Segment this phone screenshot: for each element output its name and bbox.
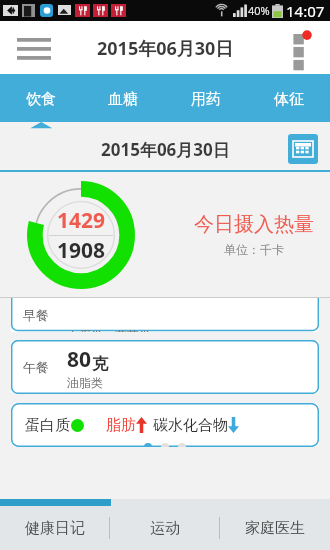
staticText: 单位：千卡 — [224, 242, 284, 257]
staticText: 饮食 — [26, 90, 56, 109]
staticText: 1429 — [57, 206, 106, 235]
staticText: 运动 — [150, 519, 180, 538]
staticText: 蔬菜类 — [115, 328, 151, 332]
button[interactable]: 血糖 — [82, 76, 164, 122]
staticText: 脂肪 — [106, 416, 136, 435]
button[interactable]: 健康日记 — [0, 506, 110, 550]
staticText: 家庭医生 — [245, 519, 305, 538]
button[interactable]: 午餐 — [11, 340, 319, 394]
button[interactable]: 早餐 — [11, 298, 319, 332]
staticText: 蛋白质 — [25, 416, 70, 435]
staticText: 碳水化合物 — [153, 416, 228, 435]
staticText: 早餐 — [23, 307, 49, 323]
staticText: 2015年06月30日 — [101, 138, 230, 161]
staticText: 血糖 — [108, 90, 138, 109]
staticText: 1908 — [57, 236, 106, 265]
button[interactable]: 家庭医生 — [220, 506, 330, 550]
staticText: 2015年06月30日 — [97, 36, 234, 61]
button[interactable]: 用药 — [164, 76, 247, 122]
staticText: 健康日记 — [25, 519, 85, 538]
staticText: 80 — [67, 345, 92, 374]
staticText: 午餐 — [23, 359, 49, 375]
button[interactable]: 体征 — [247, 76, 330, 122]
button[interactable]: 蛋白质 — [11, 403, 319, 447]
staticText: 油脂类 — [67, 375, 103, 390]
staticText: 克 — [92, 354, 108, 374]
staticText: 40% — [248, 3, 270, 18]
button[interactable]: Menu — [12, 29, 56, 69]
button[interactable]: 运动 — [110, 506, 220, 550]
staticText: 用药 — [191, 90, 221, 109]
staticText: 14:07 — [286, 1, 325, 21]
button[interactable]: 饮食 — [0, 76, 82, 122]
button[interactable]: More options — [284, 28, 318, 70]
staticText: 体征 — [274, 90, 304, 109]
staticText: 今日摄入热量 — [194, 212, 314, 237]
staticText: 肉蛋类 — [67, 328, 103, 332]
button[interactable]: Pick date — [288, 134, 318, 164]
